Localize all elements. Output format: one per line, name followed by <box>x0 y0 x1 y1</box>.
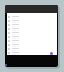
button[interactable] <box>7 47 57 51</box>
button[interactable] <box>7 27 57 31</box>
button[interactable] <box>7 23 57 27</box>
button[interactable] <box>7 15 57 19</box>
button[interactable] <box>7 43 57 47</box>
button[interactable] <box>7 51 57 55</box>
button[interactable] <box>7 31 57 35</box>
button[interactable] <box>7 39 57 43</box>
button[interactable] <box>7 19 57 23</box>
button[interactable]: Add <box>50 52 53 55</box>
button[interactable] <box>7 35 57 39</box>
